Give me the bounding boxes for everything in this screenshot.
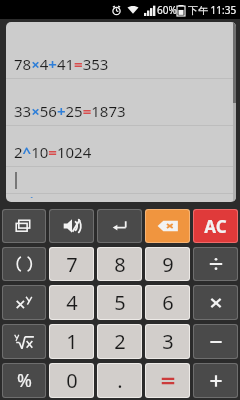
- button[interactable]: Root: [3, 325, 45, 358]
- button[interactable]: Backspace: [146, 210, 189, 242]
- button[interactable]: %: [3, 364, 45, 397]
- staticText: 3: [162, 328, 174, 355]
- button[interactable]: 6: [146, 286, 189, 319]
- staticText: 4: [66, 289, 78, 316]
- staticText: 60%: [157, 3, 177, 17]
- button[interactable]: Mute: [50, 210, 93, 242]
- button[interactable]: Divide: [194, 248, 237, 280]
- button[interactable]: 0: [50, 364, 93, 397]
- button[interactable]: 3: [146, 325, 189, 358]
- staticText: 4√16=2: [14, 194, 67, 198]
- staticText: 0: [66, 367, 78, 394]
- button[interactable]: Parentheses: [3, 248, 45, 280]
- staticText: .: [117, 367, 123, 394]
- button[interactable]: 2: [98, 325, 141, 358]
- staticText: AC: [204, 215, 227, 238]
- button[interactable]: 1: [50, 325, 93, 358]
- staticText: 78×4+41=353: [14, 54, 109, 74]
- button[interactable]: [6, 167, 236, 193]
- button[interactable]: AC: [194, 210, 237, 242]
- button[interactable]: 8: [98, 248, 141, 280]
- button[interactable]: 78×4+41=353: [6, 22, 236, 78]
- button[interactable]: 2^10=1024: [6, 126, 236, 166]
- button[interactable]: 33×56+25=1873: [6, 79, 236, 125]
- staticText: 9: [162, 251, 174, 278]
- staticText: 下午 11:35: [188, 3, 237, 17]
- staticText: 5: [114, 289, 126, 316]
- button[interactable]: .: [98, 364, 141, 397]
- button[interactable]: Minus: [194, 325, 237, 358]
- button[interactable]: 4√16=2: [6, 194, 236, 202]
- staticText: 8: [114, 251, 126, 278]
- staticText: 7: [66, 251, 78, 278]
- button[interactable]: Multiply: [194, 286, 237, 319]
- button[interactable]: Enter: [98, 210, 141, 242]
- staticText: 33×56+25=1873: [14, 101, 126, 121]
- button[interactable]: 9: [146, 248, 189, 280]
- staticText: %: [17, 368, 32, 393]
- button[interactable]: Power: [3, 286, 45, 319]
- staticText: 2^10=1024: [14, 142, 92, 162]
- button[interactable]: 7: [50, 248, 93, 280]
- staticText: 2: [114, 328, 126, 355]
- button[interactable]: 5: [98, 286, 141, 319]
- button[interactable]: Plus: [194, 364, 237, 397]
- staticText: 6: [162, 289, 174, 316]
- button[interactable]: Windows: [3, 210, 45, 242]
- button[interactable]: 4: [50, 286, 93, 319]
- staticText: 1: [66, 328, 78, 355]
- button[interactable]: Equals: [146, 364, 189, 397]
